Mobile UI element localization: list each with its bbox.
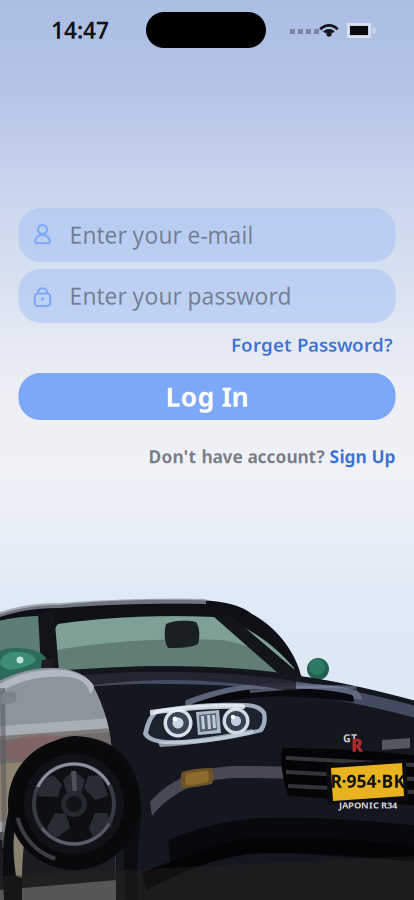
button[interactable]: Enter your e-mail (18, 208, 395, 262)
staticText: Forget Password? (231, 332, 393, 357)
button[interactable]: Forget Password? (231, 334, 393, 355)
staticText: R·954·BK (330, 769, 405, 792)
staticText: Don't have account? (148, 445, 324, 468)
staticText: Enter your password (69, 281, 291, 311)
staticText: Sign Up (329, 445, 395, 468)
staticText: Enter your e-mail (69, 220, 253, 250)
button[interactable]: Enter your password (18, 269, 395, 323)
staticText: R (351, 733, 363, 756)
staticText: JAPONIC R34 (339, 799, 397, 811)
button[interactable]: Log In (18, 373, 395, 420)
staticText: GT (343, 731, 357, 745)
button[interactable]: Sign Up (329, 445, 395, 468)
staticText: 14:47 (51, 15, 109, 45)
staticText: Log In (165, 379, 248, 414)
